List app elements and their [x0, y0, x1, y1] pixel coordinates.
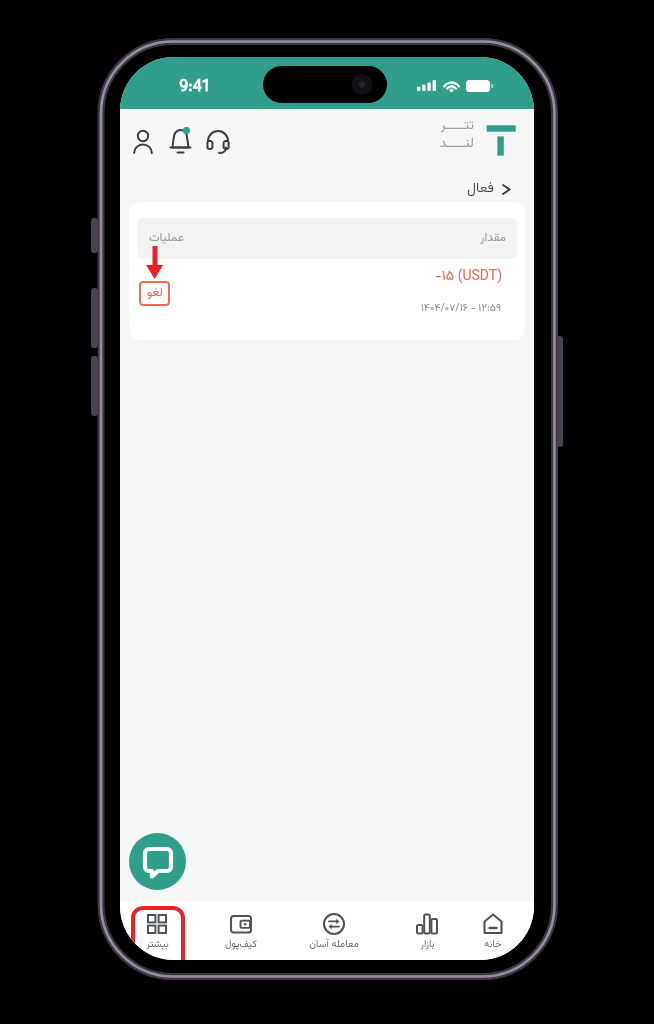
button[interactable]: بازار	[389, 901, 465, 960]
button[interactable]: معامله آسان	[296, 901, 372, 960]
button[interactable]: بیشتر	[120, 901, 195, 960]
staticText: کیف‌پول	[225, 937, 257, 953]
staticText: معامله آسان	[309, 937, 359, 953]
button[interactable]: کیف‌پول	[203, 901, 279, 960]
staticText: فعال	[454, 178, 494, 200]
staticText: لنـــــد	[419, 133, 474, 154]
staticText: لغو	[147, 284, 163, 303]
staticText: بازار	[420, 937, 435, 953]
staticText: ‭-۱۵ (USDT)	[382, 266, 502, 288]
staticText: ‭۱۴۰۴/۰۷/۱۶ - ۱۲:۵۹	[381, 300, 501, 316]
button[interactable]: لغو	[139, 281, 170, 306]
staticText: تتـــــر	[419, 115, 474, 136]
staticText: بیشتر	[146, 937, 169, 953]
button[interactable]: خانه	[455, 901, 531, 960]
staticText: مقدار	[456, 229, 506, 248]
staticText: خانه	[484, 937, 502, 953]
staticText: 9:41	[167, 75, 223, 100]
staticText: عملیات	[149, 229, 199, 248]
button[interactable]	[129, 833, 186, 890]
